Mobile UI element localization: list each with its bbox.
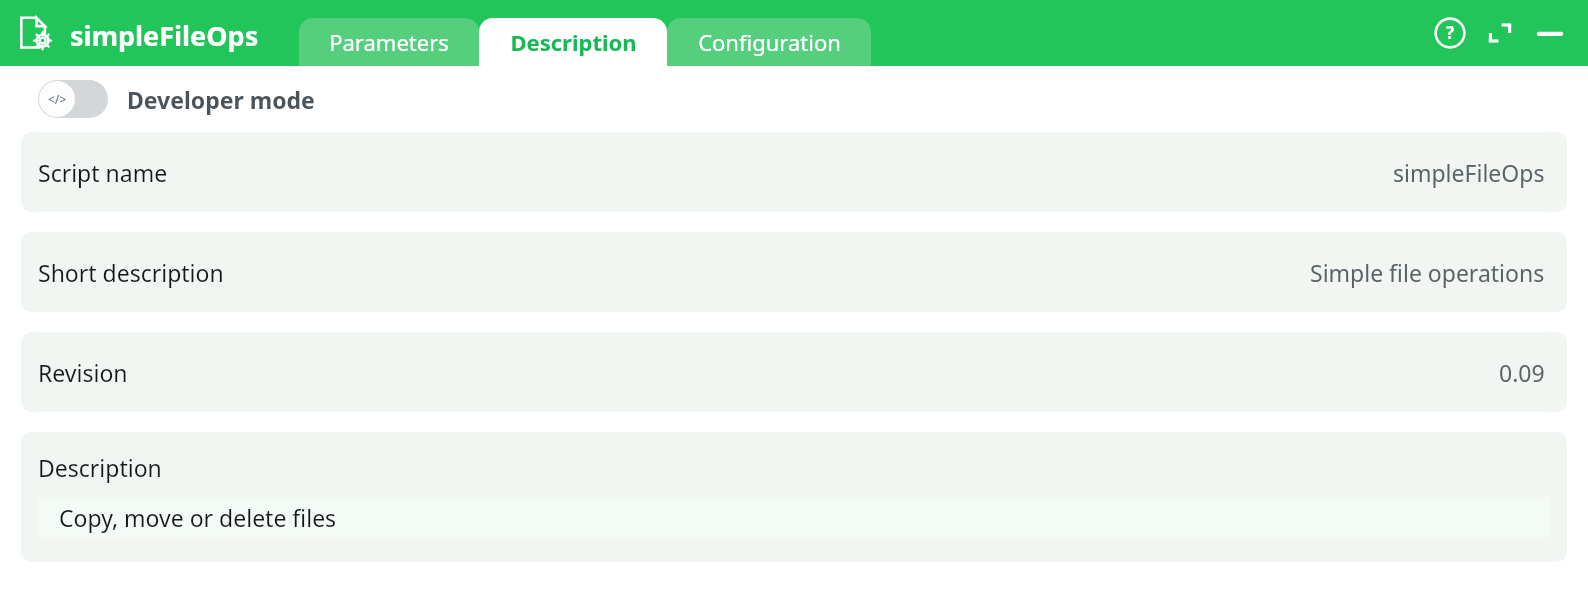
button[interactable]: </> [38, 66, 315, 132]
button[interactable]: Script name [21, 132, 1567, 212]
staticText: Parameters [329, 27, 449, 57]
staticText: Short description [38, 257, 224, 288]
button[interactable]: Expand [1480, 13, 1520, 53]
button[interactable]: Revision [21, 332, 1567, 412]
button[interactable]: Parameters [299, 18, 479, 66]
staticText: Script name [38, 157, 168, 188]
staticText: simpleFileOps [70, 17, 259, 54]
button[interactable]: Description [21, 432, 1567, 562]
staticText: Description [38, 452, 162, 483]
other: Script file [16, 14, 54, 52]
button[interactable]: Configuration [667, 18, 871, 66]
button[interactable]: Description [479, 18, 667, 66]
staticText: Description [510, 27, 637, 57]
staticText: simpleFileOps [1393, 157, 1545, 188]
staticText: </> [48, 91, 67, 107]
staticText: Developer mode [127, 84, 315, 115]
staticText: ? [1446, 21, 1455, 44]
staticText: 0.09 [1499, 357, 1545, 388]
staticText: Revision [38, 357, 128, 388]
staticText: Simple file operations [1310, 257, 1545, 288]
button[interactable]: Minimize [1530, 13, 1570, 53]
staticText: Configuration [698, 27, 841, 57]
button[interactable]: Help [1430, 13, 1470, 53]
button[interactable]: Short description [21, 232, 1567, 312]
staticText: Copy, move or delete files [59, 502, 337, 533]
